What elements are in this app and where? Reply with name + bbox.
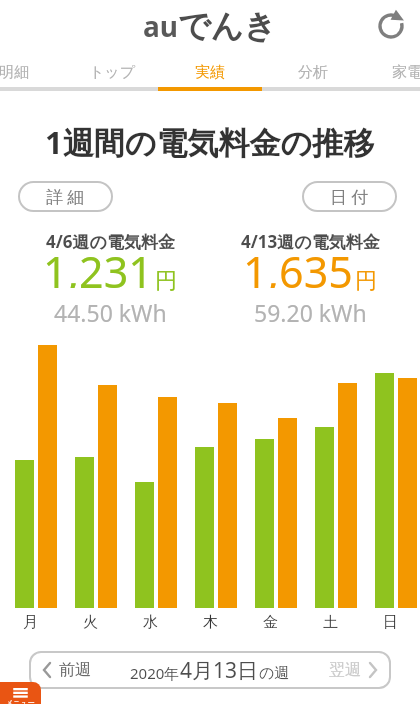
staticText: 土 (323, 613, 338, 632)
button[interactable]: 明細 (0, 55, 54, 89)
staticText: 4月13日 (180, 656, 259, 685)
staticText: 59.20 kWh (254, 297, 367, 323)
button[interactable]: 実績 (170, 55, 250, 89)
button[interactable]: 詳 細 (18, 181, 113, 212)
staticText: au (143, 7, 178, 45)
staticText: 家電 (392, 63, 420, 82)
staticText: 2020年 (130, 663, 180, 683)
staticText: 1,231 (43, 242, 153, 288)
staticText: 木 (203, 613, 218, 632)
staticText: 明細 (0, 63, 29, 82)
staticText: 月 (23, 613, 38, 632)
staticText: 金 (263, 613, 278, 632)
staticText: メニュー (6, 698, 35, 704)
staticText: トップ (89, 63, 136, 82)
button[interactable]: 分析 (273, 55, 353, 89)
button[interactable]: 家電 (367, 55, 420, 89)
staticText: 日 付 (330, 185, 369, 208)
staticText: でんき (178, 6, 277, 46)
staticText: 火 (83, 613, 98, 632)
button[interactable]: 翌週 (329, 660, 379, 680)
staticText: 円 (355, 267, 377, 295)
staticText: 詳 細 (46, 185, 85, 208)
staticText: 44.50 kWh (54, 297, 167, 323)
button[interactable] (378, 13, 404, 39)
staticText: の週 (259, 664, 290, 683)
staticText: 円 (155, 267, 177, 295)
staticText: 分析 (298, 63, 328, 82)
staticText: 4/6週の電気料金 (46, 230, 175, 250)
staticText: 1,635 (243, 242, 353, 288)
staticText: 水 (143, 613, 158, 632)
button[interactable]: トップ (72, 55, 152, 89)
button[interactable]: メニュー (0, 682, 41, 704)
staticText: 前週 (59, 660, 91, 680)
staticText: 日 (383, 613, 398, 632)
button[interactable]: 前週 (41, 660, 91, 680)
staticText: 実績 (195, 63, 225, 82)
button[interactable]: 日 付 (302, 181, 397, 212)
staticText: 4/13週の電気料金 (241, 230, 380, 250)
staticText: 1週間の電気料金の推移 (45, 121, 375, 163)
staticText: 翌週 (329, 660, 361, 680)
